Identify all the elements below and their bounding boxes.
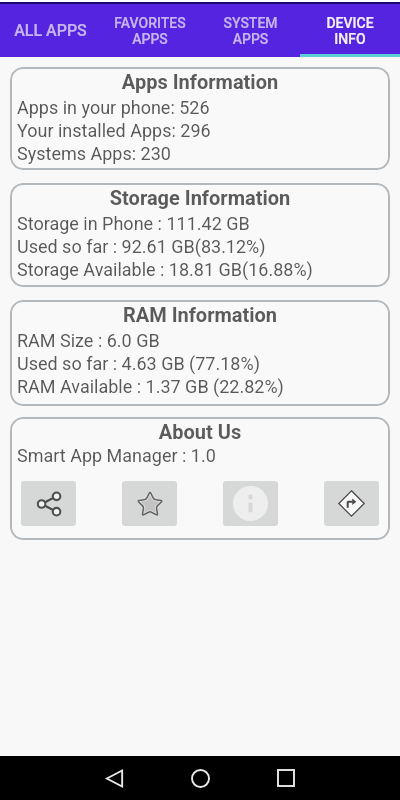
button[interactable]: Home <box>172 756 228 800</box>
button[interactable]: RAM Information <box>10 300 390 406</box>
staticText: DEVICE INFO <box>326 15 374 47</box>
staticText: Used so far : 92.61 GB(83.12%) <box>17 236 266 257</box>
button[interactable]: Storage Information <box>10 183 390 287</box>
staticText: RAM Size : 6.0 GB <box>17 330 160 351</box>
button[interactable]: Apps Information <box>10 67 390 170</box>
staticText: RAM Available : 1.37 GB (22.82%) <box>17 376 284 397</box>
button[interactable]: ALL APPS <box>0 4 100 57</box>
staticText: Storage Information <box>10 186 390 209</box>
staticText: Systems Apps: 230 <box>17 143 171 164</box>
button[interactable]: Directions <box>324 481 379 526</box>
staticText: ALL APPS <box>14 21 87 40</box>
staticText: Used so far : 4.63 GB (77.18%) <box>17 353 260 374</box>
staticText: Storage in Phone : 111.42 GB <box>17 213 250 234</box>
staticText: Your installed Apps: 296 <box>17 120 211 141</box>
button[interactable]: About info <box>223 481 278 526</box>
button[interactable]: Rate this app <box>122 481 177 526</box>
button[interactable]: Back <box>86 756 142 800</box>
staticText: RAM Information <box>10 303 390 326</box>
staticText: About Us <box>10 420 390 443</box>
staticText: Storage Available : 18.81 GB(16.88%) <box>17 259 313 280</box>
button[interactable]: Share <box>21 481 76 526</box>
button[interactable]: Recent apps <box>258 756 314 800</box>
staticText: Apps Information <box>10 70 390 93</box>
staticText: Apps in your phone: 526 <box>17 97 210 118</box>
button[interactable]: FAVORITES APPS <box>100 4 200 57</box>
staticText: FAVORITES APPS <box>114 15 186 47</box>
staticText: Smart App Manager : 1.0 <box>17 445 216 466</box>
button[interactable]: DEVICE INFO <box>300 4 400 57</box>
staticText: SYSTEM APPS <box>223 15 278 47</box>
button[interactable]: About Us <box>10 417 390 540</box>
button[interactable]: SYSTEM APPS <box>200 4 300 57</box>
